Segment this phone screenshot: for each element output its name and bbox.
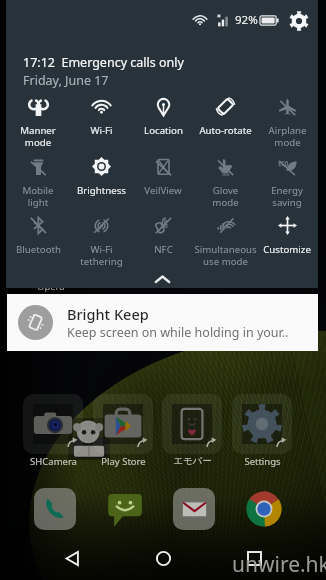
button[interactable]: エモパー [157,394,227,467]
button[interactable]: Simultaneous use mode [194,215,256,268]
button[interactable]: App [173,488,215,530]
staticText: VeilView [144,184,182,197]
button[interactable]: Wi-Fi tethering [69,215,132,268]
staticText: Airplane mode [268,124,307,149]
button[interactable]: Recents [240,544,268,572]
staticText: Keep screen on while holding in your.. [67,324,289,341]
button[interactable]: Location [132,96,194,137]
staticText: Simultaneous use mode [194,243,257,268]
staticText: Auto-rotate [199,124,252,137]
staticText: Play Store [101,455,146,468]
button[interactable]: Settings [227,394,297,468]
button[interactable]: SHCamera [18,394,88,468]
button[interactable]: Mobile light [6,156,69,209]
button[interactable]: App [243,488,285,530]
staticText: 92% [235,12,258,28]
button[interactable]: Home [149,544,177,572]
button[interactable]: Glove mode [194,156,256,209]
staticText: Mobile light [22,184,54,209]
staticText: unwire.hk [232,550,326,579]
button[interactable]: Customize [256,215,318,256]
staticText: Energy saving [271,184,303,209]
staticText: Wi-Fi tethering [80,243,123,268]
staticText: Manner mode [20,124,56,149]
button[interactable]: Bright Keep [7,294,318,351]
button[interactable]: Airplane mode [256,96,318,149]
staticText: SHCamera [30,455,77,468]
button[interactable]: Brightness [69,156,132,197]
button[interactable]: Manner mode [6,96,69,149]
button[interactable]: VeilView [132,156,194,197]
button[interactable]: NFC [132,215,194,256]
staticText: NFC [154,243,173,256]
button[interactable]: Play Store [88,394,158,468]
button[interactable]: Energy saving [256,156,318,209]
staticText: Bluetooth [16,243,61,256]
staticText: Brightness [77,184,126,197]
staticText: Location [144,124,183,137]
staticText: Glove mode [212,184,239,209]
staticText: Friday, June 17 [23,72,109,89]
staticText: Customize [263,243,311,256]
button[interactable]: Settings [288,10,309,31]
staticText: Opera [37,280,65,293]
button[interactable]: Back [58,544,86,572]
button[interactable]: Auto-rotate [194,96,256,137]
staticText: Settings [244,455,281,468]
staticText: Bright Keep [67,304,149,324]
button[interactable]: App [34,488,76,530]
staticText: 17:12 Emergency calls only [23,54,184,71]
button[interactable]: Wi-Fi [69,96,132,137]
button[interactable]: App [104,488,146,530]
staticText: Wi-Fi [90,124,113,137]
button[interactable]: Bluetooth [6,215,69,256]
staticText: エモパー [173,455,212,467]
button[interactable]: Collapse [6,270,318,288]
